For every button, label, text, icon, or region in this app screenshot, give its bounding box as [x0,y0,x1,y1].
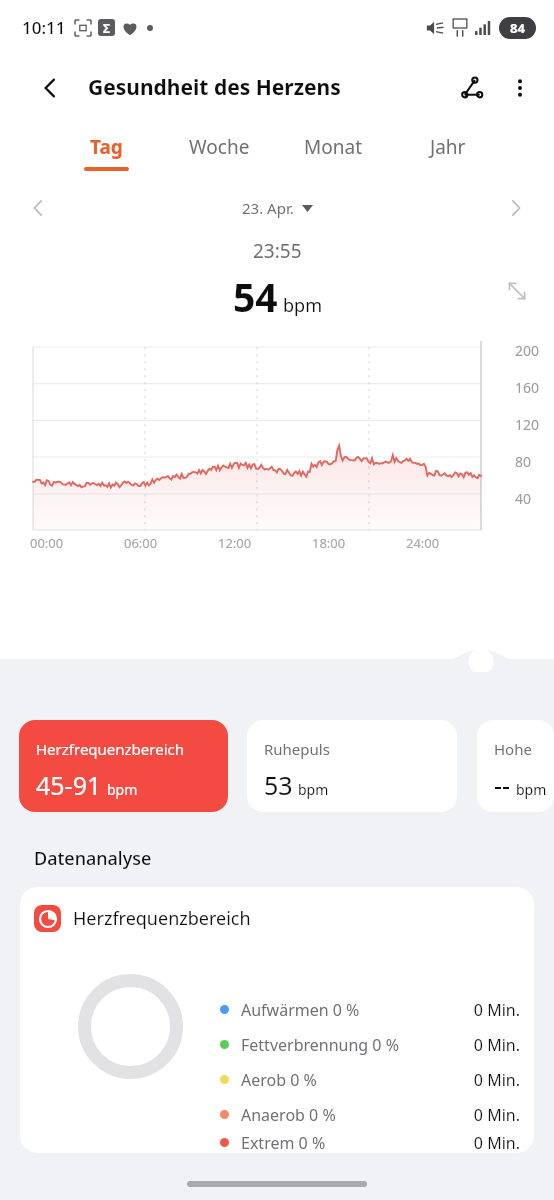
button[interactable]: Woche [163,120,276,184]
staticText: 24:00 [406,534,500,552]
staticText: 0 Min. [473,1132,520,1153]
staticText: -- [494,768,511,802]
staticText: 12:00 [218,534,312,552]
staticText: 0 Min. [473,1034,520,1056]
staticText: 45-91 [36,768,102,802]
staticText: 120 [515,415,540,434]
button[interactable]: Hohe Herzfrequenz [477,720,554,812]
staticText: Tag [90,134,123,160]
button[interactable]: Tag [50,120,163,184]
staticText: 18:00 [312,534,406,552]
button[interactable]: Previous day [18,188,58,228]
staticText: Monat [304,134,362,160]
staticText: 200 [515,341,540,360]
staticText: Jahr [430,134,466,160]
button[interactable]: Herzfrequenzbereich [20,887,534,1153]
staticText: Aerob 0 % [241,1069,317,1091]
button[interactable]: Share [452,68,492,108]
staticText: 0 Min. [473,1104,520,1126]
staticText: Gesundheit des Herzens [88,73,341,102]
staticText: Fettverbrennung 0 % [241,1034,399,1056]
staticText: bpm [516,780,547,799]
staticText: 84 [510,19,525,37]
staticText: Σ [103,20,110,36]
staticText: Herzfrequenzbereich [36,739,184,759]
button[interactable]: Expand chart [500,274,534,308]
staticText: 160 [515,378,540,397]
button[interactable]: More options [500,68,540,108]
staticText: Datenanalyse [34,846,152,871]
staticText: Anaerob 0 % [241,1104,336,1126]
button[interactable]: Herzfrequenzbereich [19,720,228,812]
staticText: 80 [515,452,532,471]
staticText: 23. Apr. [242,198,294,218]
button[interactable]: Jahr [390,120,504,184]
button[interactable]: Next day [496,188,536,228]
staticText: Extrem 0 % [241,1132,326,1153]
staticText: bpm [298,780,329,799]
staticText: 0 Min. [473,999,520,1021]
button[interactable]: 23. Apr. [242,198,313,218]
staticText: 23:55 [253,238,302,264]
staticText: 53 [264,768,293,802]
staticText: Aufwärmen 0 % [241,999,360,1021]
staticText: 54 [233,270,278,323]
staticText: 40 [515,489,532,508]
staticText: Ruhepuls [264,739,330,759]
staticText: Hohe Herzfrequenz [494,739,554,759]
staticText: Herzfrequenzbereich [73,906,251,931]
button[interactable]: Monat [276,120,390,184]
staticText: bpm [283,293,322,318]
staticText: 0 Min. [473,1069,520,1091]
staticText: Woche [189,134,250,160]
staticText: 10:11 [22,16,66,39]
button[interactable]: Back [30,68,70,108]
staticText: bpm [107,780,138,799]
staticText: 00:00 [30,534,124,552]
staticText: 06:00 [124,534,218,552]
button[interactable]: Ruhepuls [247,720,457,812]
